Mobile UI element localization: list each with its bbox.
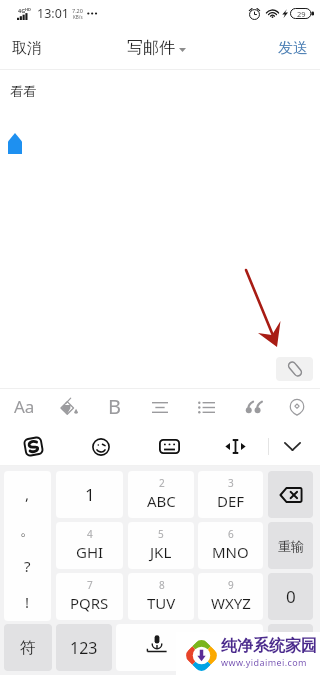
button[interactable]: 发送	[264, 30, 320, 67]
button[interactable]: Location	[280, 388, 314, 427]
staticText: 7.20	[72, 7, 83, 14]
button[interactable]: Enter	[268, 624, 313, 671]
staticText: 5	[158, 527, 164, 541]
button[interactable]: Hide keyboard	[276, 427, 309, 466]
staticText: www.yidaimei.com	[221, 656, 307, 668]
button[interactable]: 1	[56, 471, 123, 518]
staticText: 重输	[278, 538, 304, 554]
button[interactable]: 4GHI	[56, 522, 123, 569]
staticText: PQRS	[70, 593, 109, 613]
button[interactable]: Space	[116, 624, 263, 671]
staticText: WXYZ	[211, 593, 251, 613]
button[interactable]: 2ABC	[128, 471, 194, 518]
button[interactable]: 6MNO	[198, 522, 263, 569]
button[interactable]: Attach file	[276, 357, 313, 381]
staticText: 写邮件	[127, 38, 175, 58]
button[interactable]: 取消	[0, 30, 56, 67]
staticText: 符	[20, 638, 36, 658]
staticText: !	[25, 592, 30, 612]
staticText: TUV	[147, 593, 176, 613]
button[interactable]: 7PQRS	[56, 573, 123, 620]
staticText: 6	[228, 527, 234, 541]
staticText: ,	[25, 484, 30, 504]
staticText: Aa	[14, 395, 35, 418]
button[interactable]: 符	[4, 624, 52, 671]
staticText: ?	[24, 556, 31, 576]
button[interactable]: 0	[268, 573, 313, 620]
button[interactable]: Backspace	[268, 471, 313, 518]
staticText: 1	[85, 483, 95, 506]
staticText: B	[108, 393, 121, 420]
button[interactable]: 5JKL	[128, 522, 194, 569]
button[interactable]: Align	[143, 388, 177, 427]
button[interactable]: Quote	[236, 388, 270, 427]
button[interactable]: 8TUV	[128, 573, 194, 620]
button[interactable]: 写邮件	[119, 32, 194, 64]
staticText: 4	[87, 527, 93, 541]
staticText: 9	[228, 578, 234, 592]
button[interactable]: Input method	[16, 427, 50, 466]
button[interactable]: 123	[56, 624, 112, 671]
staticText: 0	[286, 585, 296, 608]
staticText: MNO	[212, 542, 249, 562]
staticText: 29	[297, 9, 306, 19]
button[interactable]: 重输	[268, 522, 313, 569]
staticText: 看看	[10, 83, 36, 99]
staticText: ABC	[147, 491, 176, 511]
button[interactable]: Bulleted list	[189, 388, 223, 427]
staticText: 纯净系统家园	[221, 636, 317, 656]
staticText: 7	[87, 578, 93, 592]
button[interactable]: Text size	[7, 388, 41, 427]
staticText: 13:01	[37, 5, 69, 22]
staticText: 3	[228, 476, 234, 490]
button[interactable]: Bold	[97, 388, 131, 427]
staticText: 2	[159, 476, 165, 490]
staticText: 8	[159, 578, 165, 592]
staticText: DEF	[217, 491, 245, 511]
staticText: 取消	[12, 39, 42, 58]
button[interactable]: 3DEF	[198, 471, 263, 518]
button[interactable]: Punctuation	[4, 471, 51, 621]
staticText: HD	[25, 7, 31, 12]
button[interactable]: 9WXYZ	[198, 573, 263, 620]
staticText: 123	[70, 637, 98, 659]
staticText: 4G	[18, 7, 26, 14]
staticText: GHI	[76, 542, 104, 562]
button[interactable]: Keyboard layout	[152, 427, 186, 466]
button[interactable]: Move cursor	[218, 427, 252, 466]
staticText: 发送	[278, 39, 308, 58]
button[interactable]: Emoji	[84, 427, 118, 466]
button[interactable]: Highlight colour	[51, 388, 85, 427]
staticText: 。	[20, 521, 35, 540]
staticText: JKL	[150, 542, 172, 562]
staticText: KB/s	[73, 14, 83, 20]
